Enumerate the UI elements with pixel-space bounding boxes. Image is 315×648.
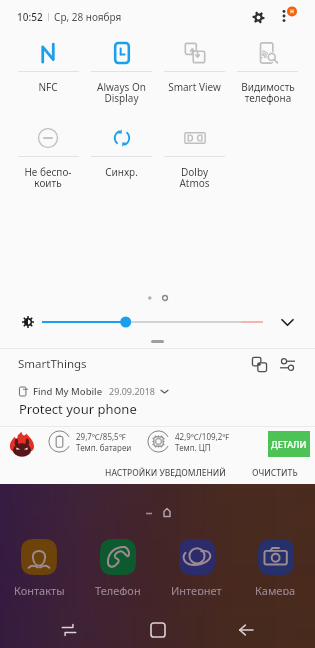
button[interactable]: Home <box>144 616 172 644</box>
button[interactable]: Не беспо- коить <box>11 125 85 210</box>
staticText: Контакты <box>14 583 65 595</box>
button[interactable]: НАСТРОЙКИ УВЕДОМЛЕНИЙ <box>100 464 231 482</box>
staticText: SmartThings <box>18 356 87 372</box>
button[interactable]: Smart View <box>158 40 231 125</box>
staticText: Always On Display <box>97 80 146 105</box>
button[interactable]: Интернет <box>157 539 236 595</box>
staticText: 29.09.2018 <box>109 385 156 397</box>
button[interactable]: More options <box>275 3 301 29</box>
button[interactable]: SmartThings settings <box>275 352 299 376</box>
staticText: Темп. ЦП <box>175 442 211 453</box>
staticText: Find My Mobile <box>33 385 103 398</box>
staticText: Не беспо- коить <box>24 165 72 190</box>
button[interactable]: Dolby Atmos <box>158 125 231 210</box>
button[interactable]: Back <box>232 616 260 644</box>
staticText: ДЕТАЛИ <box>271 438 307 450</box>
button[interactable]: Add device <box>247 352 271 376</box>
button[interactable]: Always On Display <box>85 40 158 125</box>
button[interactable]: ДЕТАЛИ <box>268 431 310 457</box>
staticText: NFC <box>38 80 58 94</box>
button[interactable]: Settings <box>245 4 271 30</box>
staticText: Телефон <box>95 583 141 595</box>
staticText: Интернет <box>171 583 222 595</box>
button[interactable]: Камера <box>236 539 315 595</box>
button[interactable]: Синхр. <box>85 125 158 210</box>
staticText: Smart View <box>168 80 221 94</box>
staticText: 42,9℃/109,2℉ <box>175 431 230 442</box>
staticText: 29,7℃/85,5℉ <box>76 431 126 442</box>
staticText: Темп. батареи <box>76 442 132 453</box>
button[interactable]: Телефон <box>78 539 157 595</box>
staticText: 10:52 <box>17 10 43 24</box>
button[interactable]: Recents <box>55 616 83 644</box>
button[interactable]: Видимость телефона <box>231 40 304 125</box>
staticText: Видимость телефона <box>241 80 295 105</box>
staticText: Protect your phone <box>19 400 137 418</box>
staticText: ОЧИСТИТЬ <box>252 467 298 479</box>
button[interactable]: ОЧИСТИТЬ <box>247 464 303 482</box>
button[interactable]: NFC <box>11 40 85 125</box>
staticText: Ср, 28 ноября <box>54 10 122 24</box>
button[interactable]: Expand panel <box>275 310 299 334</box>
staticText: Dolby Atmos <box>179 165 210 190</box>
button[interactable]: Контакты <box>0 539 78 595</box>
staticText: НАСТРОЙКИ УВЕДОМЛЕНИЙ <box>105 467 226 479</box>
staticText: Синхр. <box>105 165 138 179</box>
staticText: Камера <box>255 583 296 595</box>
